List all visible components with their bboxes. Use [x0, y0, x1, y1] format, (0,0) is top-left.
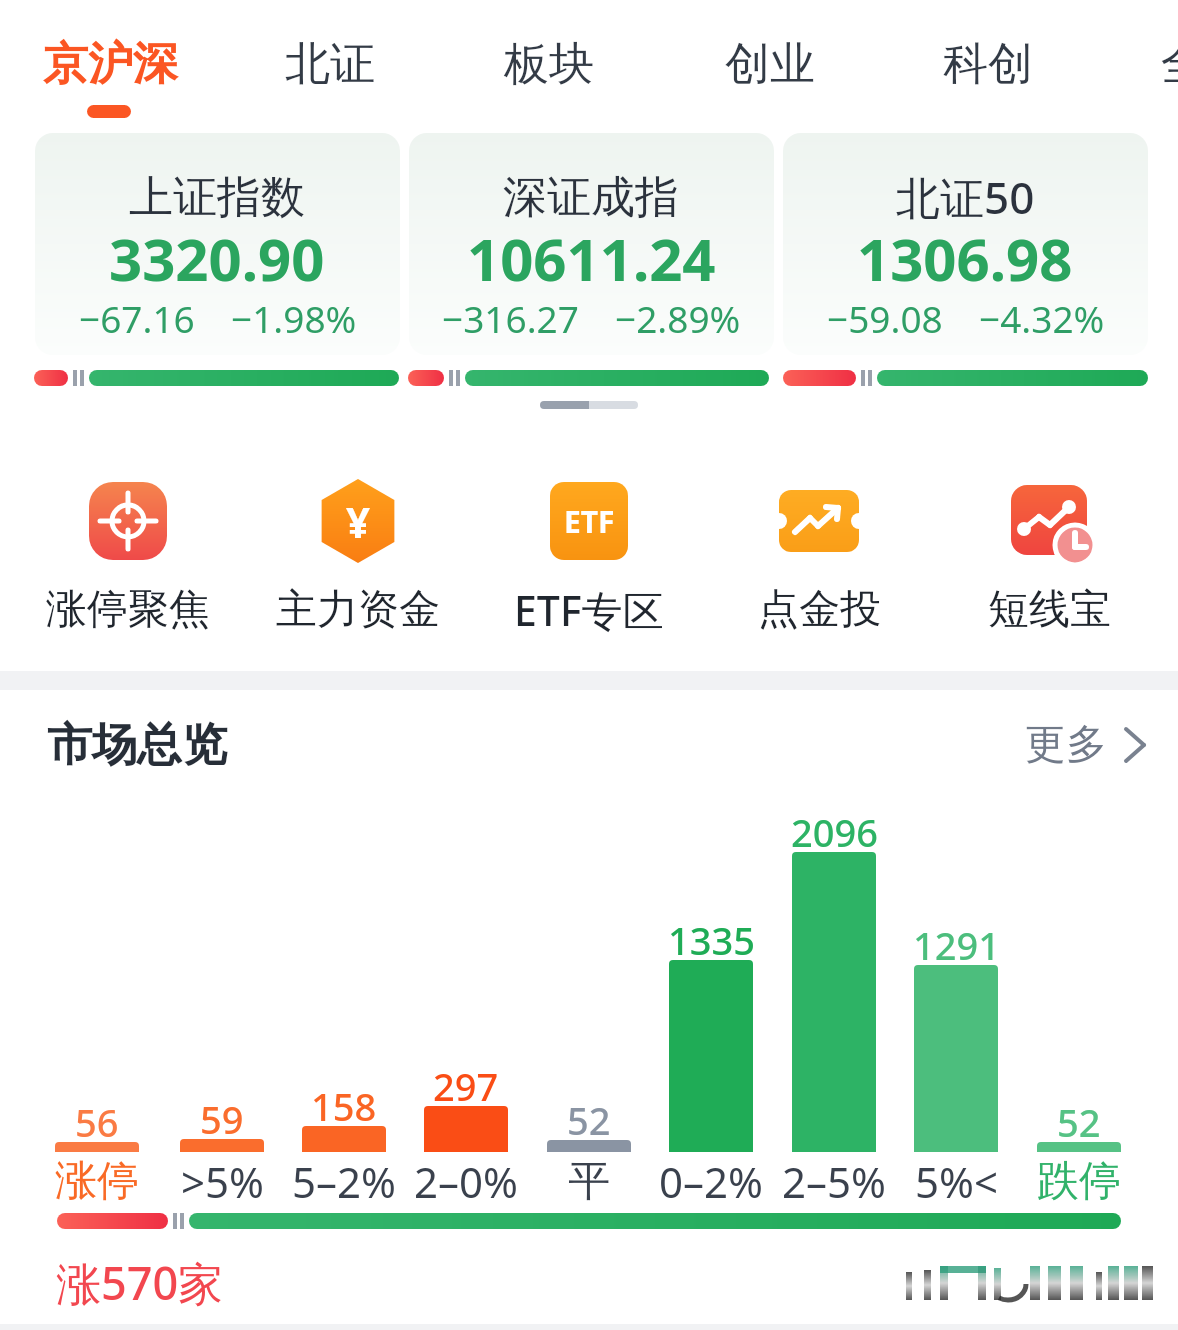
staticText: 跌停: [1037, 1155, 1121, 1208]
staticText: 297: [433, 1060, 499, 1112]
button[interactable]: 北证50: [783, 133, 1148, 355]
staticText: 全部: [1161, 36, 1178, 93]
staticText: 3320.90: [109, 219, 325, 298]
staticText: 59: [200, 1093, 244, 1145]
staticText: >5%: [181, 1153, 264, 1210]
staticText: 涨停聚焦: [46, 584, 210, 636]
staticText: 更多: [1025, 719, 1107, 771]
staticText: 158: [311, 1080, 377, 1132]
staticText: 10611.24: [467, 219, 716, 298]
staticText: 京沪深: [43, 36, 178, 93]
button[interactable]: 深证成指: [409, 133, 774, 355]
button[interactable]: 短线宝: [959, 470, 1139, 638]
staticText: 2–5%: [782, 1153, 886, 1210]
button[interactable]: 京沪深: [25, 18, 195, 110]
staticText: 涨570家: [56, 1252, 224, 1308]
staticText: ETF: [564, 501, 615, 542]
staticText: ¥: [346, 493, 371, 550]
staticText: 市场总览: [47, 717, 227, 774]
staticText: ETF专区: [514, 582, 664, 638]
button[interactable]: 涨停聚焦: [38, 470, 218, 638]
button[interactable]: ¥: [268, 470, 448, 638]
staticText: −1.98%: [231, 293, 357, 343]
staticText: 北证: [285, 36, 375, 93]
staticText: 板块: [504, 36, 594, 93]
button[interactable]: 点金投: [729, 470, 909, 638]
staticText: 0–2%: [659, 1153, 763, 1210]
button[interactable]: 板块: [464, 18, 634, 110]
staticText: −2.89%: [615, 293, 741, 343]
staticText: 1306.98: [857, 219, 1073, 298]
staticText: 北证50: [896, 167, 1035, 227]
staticText: 5%<: [915, 1153, 998, 1210]
staticText: 涨停: [55, 1155, 139, 1208]
button[interactable]: 上证指数: [35, 133, 400, 355]
staticText: 52: [1057, 1096, 1101, 1148]
staticText: 2096: [791, 806, 878, 858]
staticText: −67.16: [79, 293, 195, 343]
button[interactable]: 创业: [685, 18, 855, 110]
staticText: −316.27: [442, 293, 579, 343]
staticText: 1335: [668, 914, 755, 966]
button[interactable]: ETF: [499, 470, 679, 638]
staticText: −4.32%: [979, 293, 1105, 343]
staticText: 5–2%: [292, 1153, 396, 1210]
staticText: 平: [568, 1155, 610, 1208]
staticText: 52: [567, 1094, 611, 1146]
button[interactable]: 科创: [903, 18, 1073, 110]
staticText: 短线宝: [988, 584, 1111, 636]
staticText: 2–0%: [414, 1153, 518, 1210]
staticText: 上证指数: [129, 170, 305, 225]
staticText: −59.08: [827, 293, 943, 343]
staticText: 深证成指: [503, 170, 679, 225]
button[interactable]: 更多: [990, 712, 1160, 778]
staticText: 科创: [943, 36, 1033, 93]
button[interactable]: 北证: [245, 18, 415, 110]
staticText: 56: [75, 1096, 119, 1148]
staticText: 1291: [913, 919, 1000, 971]
staticText: 创业: [725, 36, 815, 93]
staticText: 主力资金: [276, 584, 440, 636]
staticText: 点金投: [758, 584, 881, 636]
